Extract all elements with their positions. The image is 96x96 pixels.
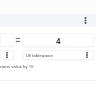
button[interactable]: US tablespoon xyxy=(22,50,94,60)
button[interactable]: More options xyxy=(80,15,91,26)
button[interactable] xyxy=(0,33,14,47)
button[interactable]: 4 xyxy=(22,33,94,47)
staticText: US tablespoon xyxy=(26,53,53,58)
staticText: rams value by 16 xyxy=(0,64,34,70)
staticText: 4 xyxy=(56,35,61,46)
button[interactable]: Source unit options xyxy=(0,50,14,60)
